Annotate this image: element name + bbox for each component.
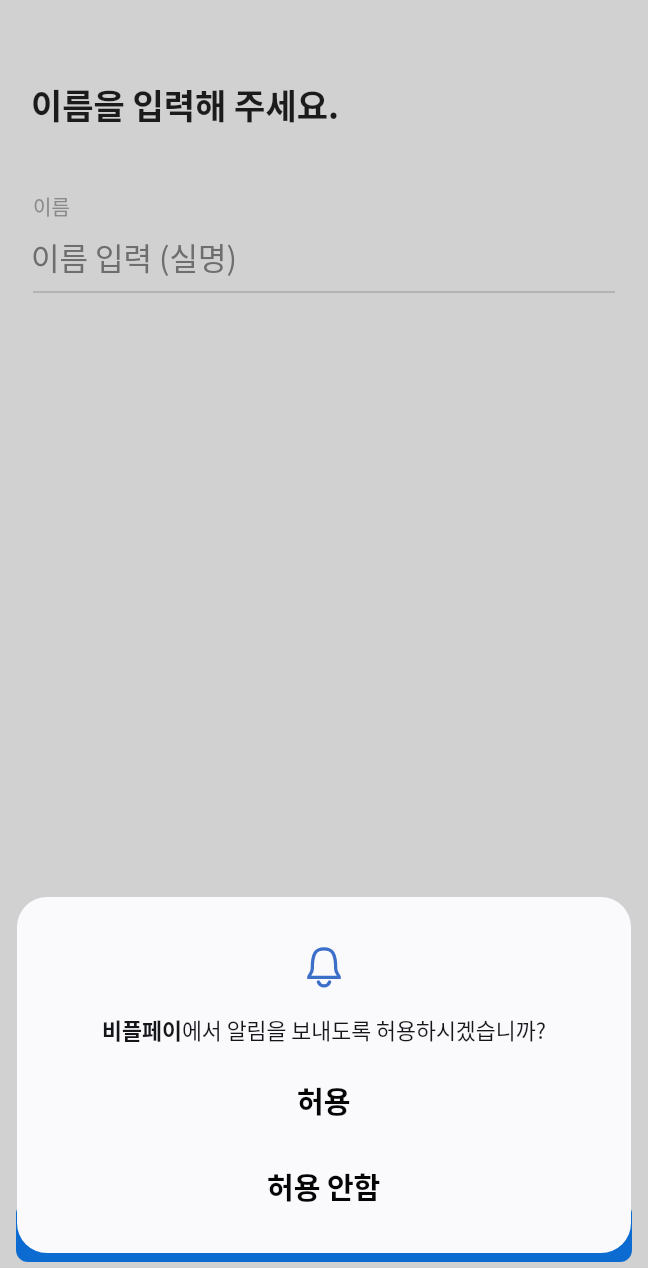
- button[interactable]: 허용: [17, 1070, 631, 1130]
- button[interactable]: 이름: [0, 192, 648, 293]
- staticText: 허용: [297, 1079, 351, 1121]
- other: Notifications: [306, 947, 342, 989]
- staticText: 허용 안함: [267, 1165, 381, 1207]
- staticText: 이름: [33, 192, 70, 221]
- staticText: 이름을 입력해 주세요.: [31, 80, 340, 129]
- staticText: 이름 입력 (실명): [31, 234, 237, 279]
- button[interactable]: 확인: [16, 1202, 632, 1262]
- staticText: 비플페이에서 알림을 보내도록 허용하시겠습니까?: [102, 1014, 546, 1045]
- button[interactable]: 허용 안함: [17, 1156, 631, 1216]
